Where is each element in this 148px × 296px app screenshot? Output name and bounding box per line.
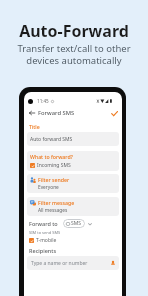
staticText: Filter sender — [38, 176, 70, 183]
staticText: Everyone — [38, 184, 59, 191]
staticText: Filter message — [38, 199, 75, 206]
staticText: Transfer text/call to other devices auto… — [17, 42, 131, 67]
button[interactable]: Type a name or number — [27, 256, 119, 270]
button[interactable]: T-mobile — [29, 237, 57, 244]
staticText: Auto-Forward — [19, 20, 129, 42]
staticText: Title — [29, 123, 40, 130]
button[interactable]: Auto forward SMS — [27, 132, 119, 146]
staticText: Recipients — [29, 247, 57, 254]
staticText: Type a name or number — [31, 260, 88, 267]
button[interactable]: Back — [27, 108, 37, 118]
button[interactable]: Save — [109, 108, 120, 119]
staticText: Forward SMS — [38, 109, 75, 117]
staticText: Incoming SMS — [37, 162, 71, 169]
button[interactable]: Filter sender — [27, 174, 119, 193]
staticText: 11:45 — [37, 98, 49, 104]
staticText: SIM to send SMS — [29, 230, 61, 235]
staticText: T-mobile — [36, 237, 57, 244]
staticText: All messages — [38, 207, 68, 214]
button[interactable]: Incoming SMS — [30, 162, 71, 169]
staticText: Forward to — [29, 220, 58, 227]
button[interactable]: Filter message — [27, 197, 119, 216]
staticText: Auto forward SMS — [30, 136, 73, 143]
staticText: What to forward? — [30, 153, 73, 160]
staticText: SMS — [71, 220, 82, 227]
button[interactable]: SMS — [63, 219, 85, 228]
button[interactable]: What to forward? — [27, 151, 119, 171]
